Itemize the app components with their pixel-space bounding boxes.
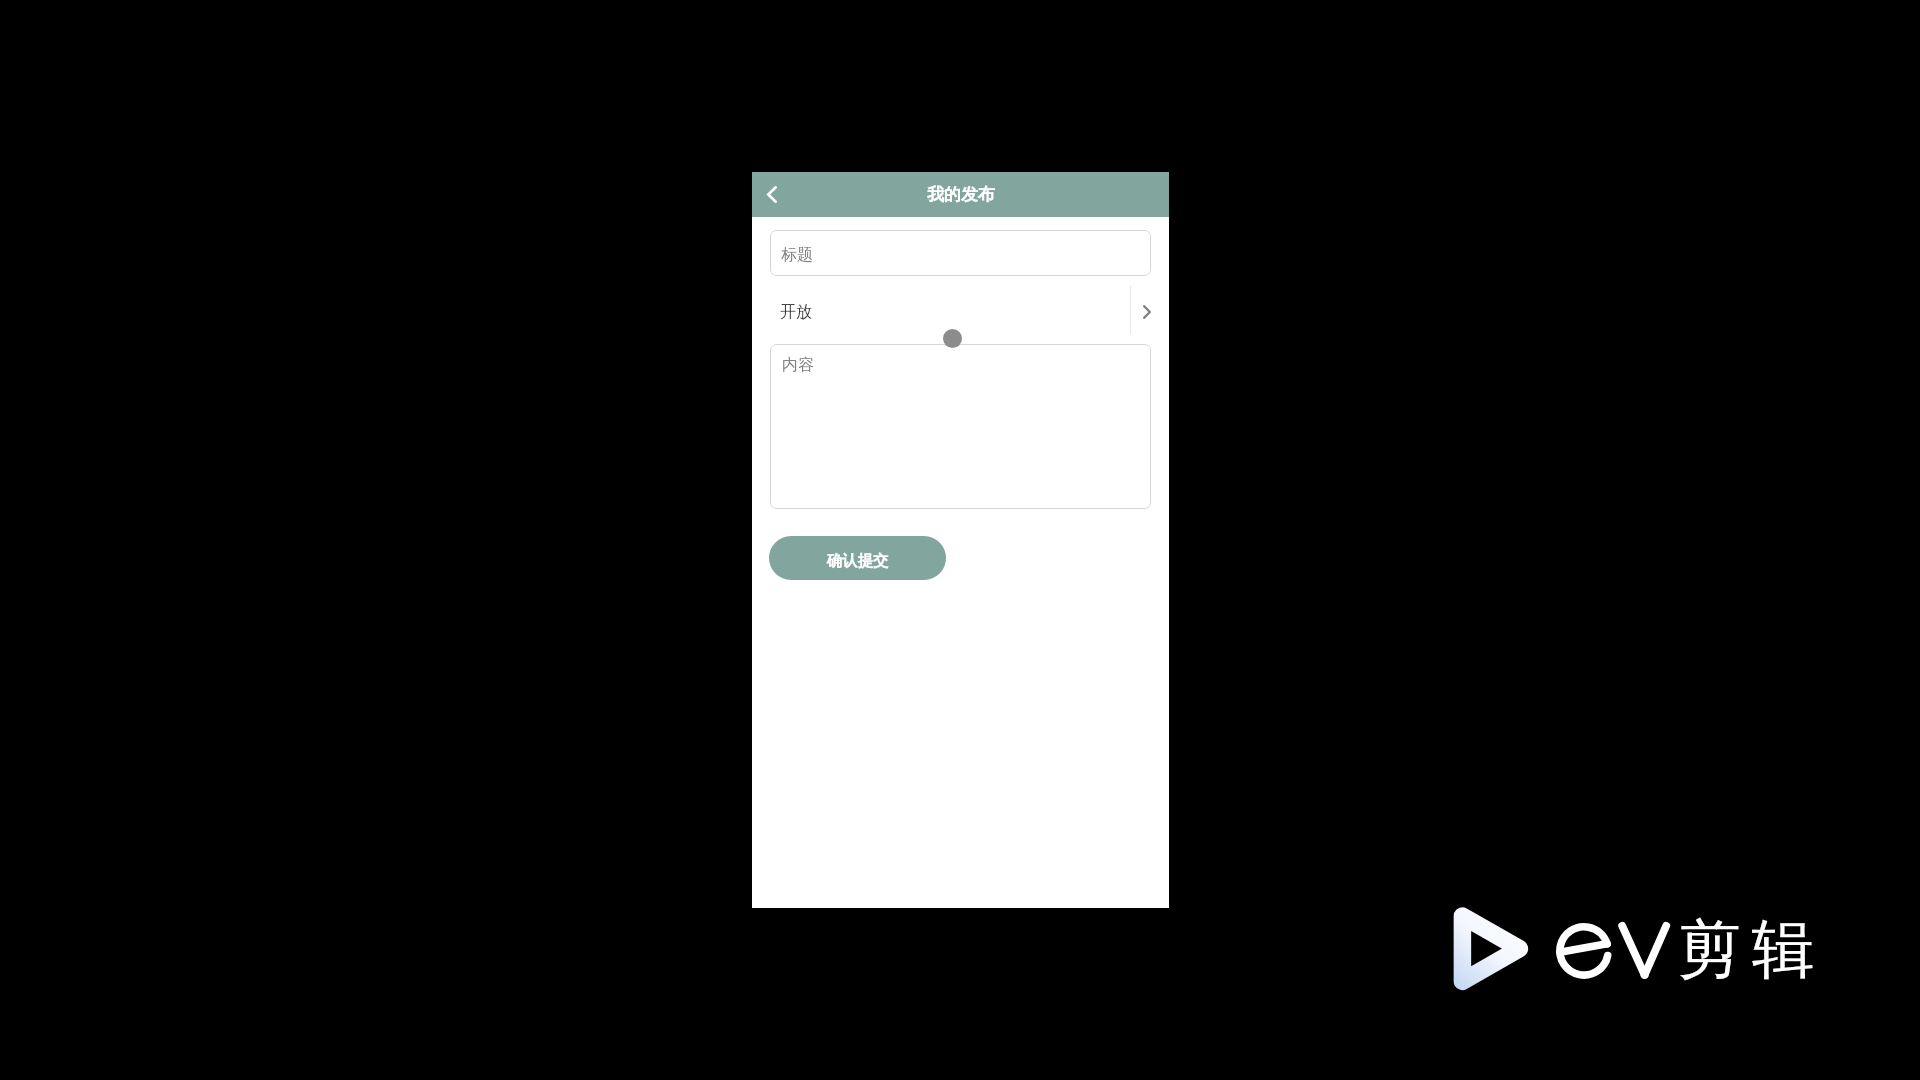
button[interactable]: 确认提交: [769, 536, 946, 580]
staticText: 开放: [780, 302, 812, 322]
staticText: 内容: [782, 355, 814, 375]
button[interactable]: Back: [752, 172, 794, 217]
button[interactable]: 内容: [770, 344, 1151, 509]
staticText: 标题: [781, 245, 813, 265]
staticText: 剪辑: [1678, 910, 1825, 989]
staticText: 确认提交: [827, 551, 889, 570]
staticText: 我的发布: [927, 184, 995, 205]
button[interactable]: 标题: [770, 230, 1151, 276]
button[interactable]: 开放: [752, 276, 1169, 344]
